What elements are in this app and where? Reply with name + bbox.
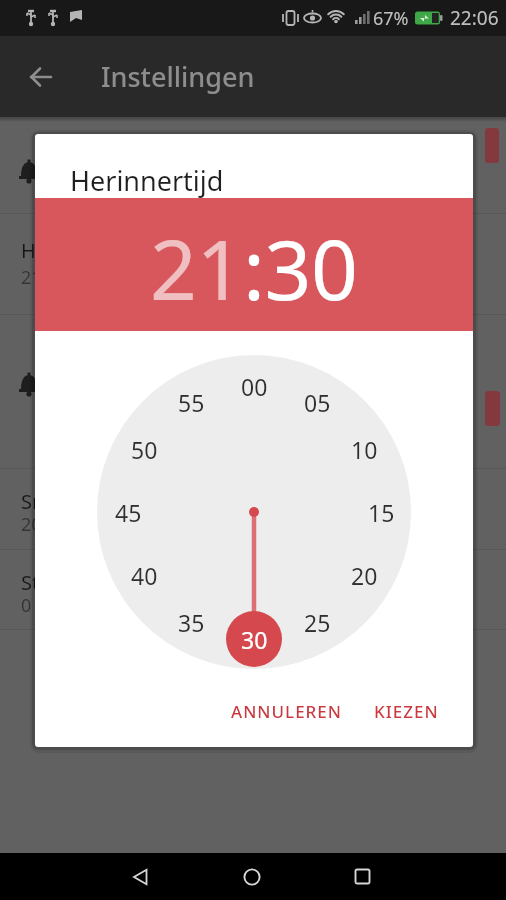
button[interactable]: ANNULEREN (231, 700, 343, 723)
button[interactable]: :30 (243, 212, 358, 324)
staticText: Herinnertijd (21, 237, 135, 264)
staticText: ANNULEREN (231, 700, 343, 723)
staticText: KIEZEN (374, 700, 439, 723)
staticText: 55 (178, 387, 205, 417)
staticText: Instellingen (101, 58, 255, 95)
button[interactable]: 05 (295, 387, 339, 417)
staticText: 10 (351, 434, 378, 464)
staticText: 40 (131, 560, 158, 590)
button[interactable] (243, 868, 261, 886)
staticText: 45 (115, 497, 142, 527)
staticText: 35 (178, 607, 205, 637)
button[interactable]: 15 (359, 497, 403, 527)
button[interactable]: 10 (342, 434, 386, 464)
button[interactable]: 40 (122, 560, 166, 590)
button[interactable]: 20 (342, 560, 386, 590)
button[interactable]: KIEZEN (374, 700, 439, 723)
staticText: 00 (241, 371, 268, 401)
staticText: Snoozetijd (21, 488, 119, 515)
staticText: 0 (21, 593, 32, 618)
staticText: 20 minuten (21, 512, 118, 537)
staticText: 22:06 (450, 5, 499, 31)
button[interactable]: 35 (169, 607, 213, 637)
staticText: Herinnertijd (70, 162, 224, 199)
button[interactable]: 00 (232, 371, 276, 401)
button[interactable]: 45 (106, 497, 150, 527)
button[interactable] (30, 66, 52, 88)
staticText: 21:30 (21, 265, 68, 290)
staticText: 67% (373, 6, 409, 31)
staticText: 30 (241, 624, 268, 654)
staticText: 25 (304, 607, 331, 637)
button[interactable]: 30 (232, 624, 276, 654)
button[interactable] (133, 869, 149, 885)
button[interactable]: 55 (169, 387, 213, 417)
button[interactable]: 25 (295, 607, 339, 637)
staticText: 05 (304, 387, 331, 417)
button[interactable]: 21 (150, 212, 243, 324)
staticText: 20 (351, 560, 378, 590)
button[interactable] (355, 869, 370, 884)
staticText: 50 (131, 434, 158, 464)
staticText: Standaard (21, 569, 118, 596)
staticText: 15 (368, 497, 395, 527)
button[interactable]: 50 (122, 434, 166, 464)
